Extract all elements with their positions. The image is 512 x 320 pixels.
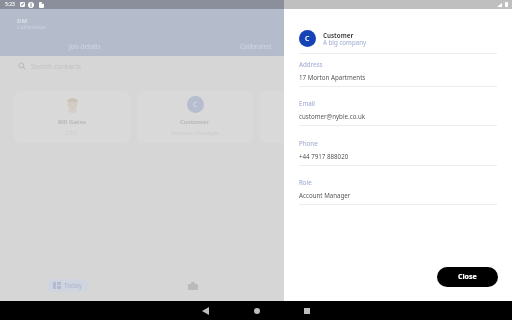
staticText: DM xyxy=(17,17,28,25)
staticText: Phone xyxy=(299,139,318,147)
button[interactable]: C xyxy=(137,91,253,143)
staticText: Job details xyxy=(69,42,101,51)
button[interactable]: Close xyxy=(437,267,498,287)
button[interactable]: C xyxy=(299,30,316,47)
staticText: customer@nyble.co.uk xyxy=(299,112,366,120)
staticText: 5:23 xyxy=(5,1,15,8)
staticText: Account Manager xyxy=(299,191,351,199)
staticText: Close xyxy=(458,272,477,282)
staticText: Someone xyxy=(427,118,455,126)
button[interactable]: Signed off xyxy=(341,39,512,53)
staticText: Search contacts xyxy=(31,62,82,71)
staticText: Account Manager xyxy=(171,129,220,137)
staticText: Calibration xyxy=(17,23,46,31)
staticText: Customer xyxy=(323,31,354,39)
staticText: Today xyxy=(64,281,83,290)
staticText: Customer xyxy=(180,118,210,126)
staticText: 17 Morton Apartments xyxy=(299,73,366,81)
staticText: Calibrated xyxy=(240,42,272,51)
staticText: Address xyxy=(299,60,323,68)
button[interactable]: Recents xyxy=(289,301,325,320)
button[interactable]: Today xyxy=(47,279,89,292)
button[interactable]: Search contacts xyxy=(18,56,82,76)
staticText: Jane Doe xyxy=(305,118,332,126)
staticText: +44 7917 888020 xyxy=(299,152,349,160)
staticText: C xyxy=(193,100,198,110)
staticText: Role xyxy=(299,178,312,186)
button[interactable]: Jane Doe xyxy=(260,91,376,143)
button[interactable]: Jobs xyxy=(181,279,205,293)
button[interactable]: Job details xyxy=(0,39,170,53)
button[interactable]: Calibrated xyxy=(170,39,341,53)
staticText: C xyxy=(305,34,310,44)
button[interactable]: Back xyxy=(187,301,223,320)
button[interactable]: Home xyxy=(239,301,275,320)
staticText: Email xyxy=(299,99,315,107)
staticText: A big company xyxy=(323,38,367,46)
staticText: Bill Gates xyxy=(58,118,87,126)
button[interactable]: Bill Gates xyxy=(14,91,130,143)
